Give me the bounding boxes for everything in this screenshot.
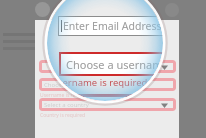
- other: Open dropdown: [161, 64, 168, 71]
- staticText: Enter Email Address: [63, 19, 162, 33]
- button[interactable]: Select a country: [39, 98, 176, 111]
- staticText: Choose a username: [44, 81, 101, 89]
- button[interactable]: Enter Email Address: [58, 16, 163, 36]
- button[interactable]: Choose a username: [59, 52, 163, 76]
- button[interactable]: [39, 60, 176, 73]
- other: Open country dropdown: [161, 102, 168, 109]
- staticText: Choose a username: [66, 57, 163, 72]
- staticText: Username is required: [51, 76, 148, 89]
- staticText: Country is required: [40, 112, 86, 119]
- staticText: Username is required: [40, 92, 91, 99]
- staticText: Select a country: [44, 101, 89, 109]
- button[interactable]: Choose a username: [39, 78, 176, 91]
